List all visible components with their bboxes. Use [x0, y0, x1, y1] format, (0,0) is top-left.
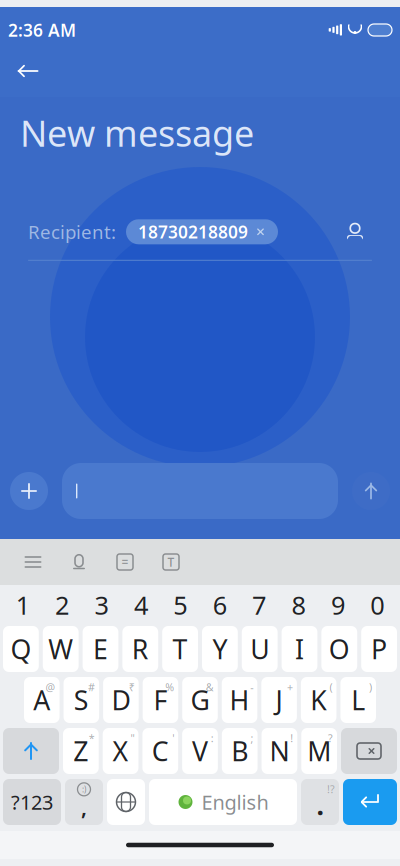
staticText: R — [132, 631, 149, 667]
staticText: T — [167, 554, 174, 570]
staticText: ; — [251, 731, 254, 745]
staticText: English — [201, 789, 268, 815]
button[interactable]: N — [262, 728, 297, 774]
button[interactable]: Choose contact — [338, 215, 372, 249]
button[interactable]: 9 — [318, 589, 358, 621]
button[interactable]: Backspace — [341, 728, 397, 774]
staticText: 4 — [134, 588, 148, 622]
staticText: D — [111, 682, 130, 718]
button[interactable]: 7 — [239, 589, 279, 621]
staticText: G — [190, 682, 209, 718]
button[interactable]: C — [142, 728, 178, 774]
button[interactable]: R — [122, 626, 158, 672]
button[interactable]: B — [222, 728, 258, 774]
button[interactable]: 1 — [3, 589, 42, 621]
staticText: 18730218809 — [138, 220, 248, 243]
button[interactable]: H — [222, 677, 257, 723]
button[interactable]: Add attachment — [10, 472, 48, 510]
staticText: ₹ — [129, 680, 135, 694]
staticText: * — [89, 731, 95, 745]
staticText: Q — [10, 631, 31, 667]
staticText: C — [152, 733, 169, 769]
button[interactable]: 5 — [161, 589, 200, 621]
button[interactable]: Voice input — [56, 539, 102, 585]
staticText: 3 — [94, 588, 108, 622]
button[interactable]: Q — [3, 626, 39, 672]
staticText: 0 — [370, 588, 384, 622]
staticText: H — [230, 682, 250, 718]
staticText: W — [48, 631, 73, 667]
staticText: E — [93, 631, 108, 667]
button[interactable]: Clipboard — [102, 539, 148, 585]
staticText: # — [88, 680, 95, 694]
staticText: % — [165, 680, 174, 694]
staticText: - — [250, 680, 253, 694]
button[interactable]: E — [83, 626, 118, 672]
button[interactable]: O — [321, 626, 357, 672]
staticText: ) — [369, 680, 372, 694]
button[interactable]: S — [64, 677, 99, 723]
button[interactable]: Message text field — [62, 463, 338, 519]
staticText: L — [351, 682, 365, 718]
button[interactable]: T — [162, 626, 198, 672]
button[interactable]: Z — [63, 728, 99, 774]
staticText: New message — [20, 109, 254, 157]
staticText: A — [33, 682, 50, 718]
button[interactable]: X — [103, 728, 138, 774]
staticText: & — [206, 680, 214, 694]
button[interactable]: 3 — [82, 589, 121, 621]
button[interactable]: M — [301, 728, 337, 774]
staticText: K — [310, 682, 327, 718]
button[interactable]: J — [261, 677, 297, 723]
staticText: P — [371, 631, 387, 667]
button[interactable]: Shift — [3, 728, 59, 774]
staticText: I — [295, 631, 304, 667]
button[interactable]: Text tools — [148, 539, 194, 585]
button[interactable]: K — [301, 677, 336, 723]
staticText: ?123 — [11, 789, 53, 815]
staticText: V — [192, 733, 208, 769]
staticText: X — [113, 733, 129, 769]
button[interactable]: 18730218809 — [126, 219, 278, 244]
staticText: S — [74, 682, 89, 718]
staticText: 2 — [55, 588, 69, 622]
button[interactable]: Emoji and comma — [65, 779, 103, 825]
button[interactable]: P — [361, 626, 397, 672]
button[interactable]: A — [24, 677, 60, 723]
staticText: O — [329, 631, 350, 667]
button[interactable]: Back — [6, 51, 50, 91]
button[interactable]: Y — [202, 626, 238, 672]
staticText: U — [250, 631, 269, 667]
button[interactable]: 6 — [200, 589, 239, 621]
button[interactable]: 8 — [279, 589, 318, 621]
button[interactable]: 0 — [358, 589, 397, 621]
button[interactable]: Period — [301, 779, 339, 825]
button[interactable]: English — [149, 779, 297, 825]
staticText: Recipient: — [28, 219, 116, 244]
button[interactable]: L — [340, 677, 376, 723]
staticText: J — [276, 682, 283, 718]
button[interactable]: W — [43, 626, 79, 672]
button[interactable]: Send — [352, 472, 390, 510]
button[interactable]: Enter — [343, 779, 397, 825]
button[interactable]: 4 — [121, 589, 161, 621]
staticText: + — [287, 680, 293, 694]
button[interactable]: ?123 — [3, 779, 61, 825]
staticText: : — [211, 731, 214, 745]
staticText: N — [269, 733, 289, 769]
button[interactable]: G — [182, 677, 218, 723]
staticText: 9 — [331, 588, 345, 622]
button[interactable]: V — [182, 728, 218, 774]
button[interactable]: U — [242, 626, 278, 672]
staticText: !? — [327, 782, 335, 796]
button[interactable]: Switch language — [107, 779, 145, 825]
button[interactable]: I — [282, 626, 317, 672]
staticText: 5 — [173, 588, 187, 622]
button[interactable]: F — [143, 677, 178, 723]
staticText: Z — [73, 733, 88, 769]
staticText: T — [173, 631, 188, 667]
staticText: . — [316, 787, 323, 823]
button[interactable]: 2 — [42, 589, 82, 621]
button[interactable]: Keyboard menu — [10, 539, 56, 585]
button[interactable]: D — [103, 677, 139, 723]
